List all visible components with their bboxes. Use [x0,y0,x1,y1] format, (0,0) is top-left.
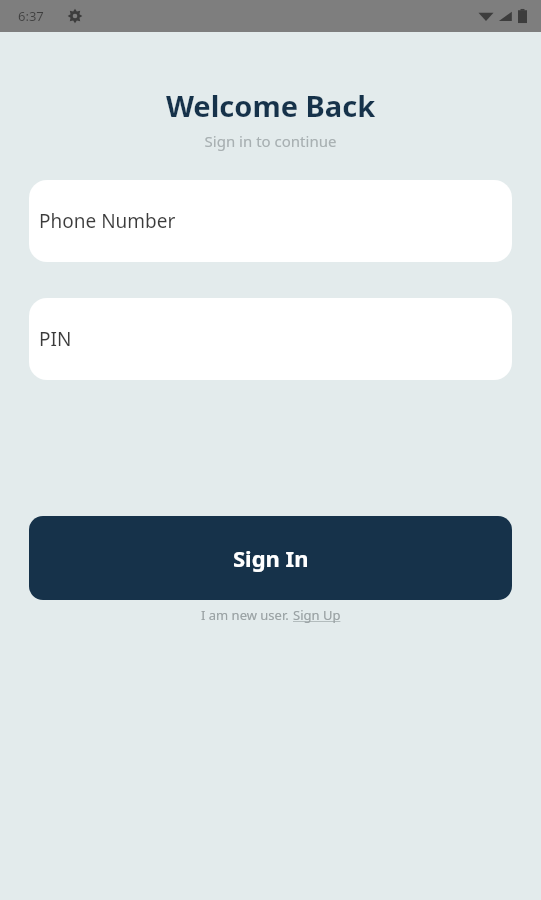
staticText: I am new user. [201,606,293,624]
button[interactable]: Sign Up [293,606,341,624]
button[interactable]: Sign In [29,516,512,600]
staticText: Phone Number [39,208,176,234]
staticText: Sign in to continue [0,131,541,151]
button[interactable]: Phone Number [29,180,512,262]
button[interactable]: PIN [29,298,512,380]
staticText: PIN [39,326,72,352]
staticText: 6:37 [18,7,44,25]
other: Settings [67,8,83,24]
staticText: Sign In [233,543,309,573]
staticText: Sign Up [293,606,341,624]
staticText: Welcome Back [0,86,541,125]
